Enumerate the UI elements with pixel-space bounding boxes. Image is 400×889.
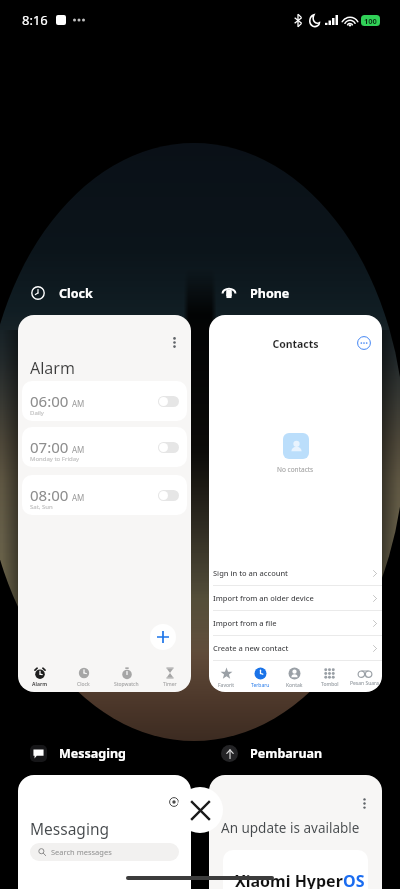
- button[interactable]: Messaging: [29, 743, 126, 763]
- button[interactable]: Alarm: [18, 315, 191, 692]
- staticText: 06:00: [30, 391, 69, 411]
- button[interactable]: Import from a file: [209, 611, 382, 635]
- staticText: Search messages: [51, 847, 112, 857]
- staticText: Messaging: [30, 818, 109, 839]
- staticText: Pembaruan: [250, 745, 323, 762]
- button[interactable]: Import from an older device: [209, 586, 382, 610]
- button[interactable]: Clock: [62, 665, 105, 690]
- staticText: Monday to Friday: [30, 455, 80, 463]
- button[interactable]: Search messages: [30, 843, 179, 861]
- staticText: 07:00: [30, 437, 69, 457]
- staticText: Messaging: [59, 745, 126, 762]
- button[interactable]: Alarm: [18, 665, 62, 690]
- staticText: Sat, Sun: [30, 503, 53, 511]
- staticText: Alarm: [32, 681, 48, 688]
- button[interactable]: Pembaruan: [220, 743, 323, 763]
- staticText: Daily: [30, 409, 44, 417]
- button[interactable]: Toggle alarm: [158, 396, 179, 407]
- staticText: Clock: [77, 681, 90, 688]
- staticText: Contacts: [209, 337, 382, 351]
- staticText: Alarm: [30, 357, 75, 379]
- staticText: Stopwatch: [114, 681, 139, 688]
- button[interactable]: Timer: [148, 665, 191, 690]
- button[interactable]: 06:00: [22, 381, 187, 421]
- button[interactable]: 08:00: [22, 475, 187, 515]
- staticText: Timer: [163, 681, 177, 688]
- staticText: Favorit: [218, 682, 235, 689]
- staticText: Create a new contact: [213, 643, 289, 653]
- staticText: No contacts: [277, 465, 314, 474]
- button[interactable]: Pesan Suara: [347, 665, 382, 690]
- button[interactable]: 07:00: [22, 427, 187, 467]
- button[interactable]: Stopwatch: [105, 665, 148, 690]
- button[interactable]: Clock: [29, 283, 93, 303]
- button[interactable]: Sign in to an account: [209, 561, 382, 585]
- button[interactable]: Toggle alarm: [158, 490, 179, 501]
- button[interactable]: Tombol: [312, 665, 347, 690]
- staticText: Tombol: [321, 681, 339, 688]
- staticText: An update is available: [221, 819, 360, 837]
- staticText: Sign in to an account: [213, 568, 288, 578]
- button[interactable]: Toggle alarm: [158, 442, 179, 453]
- staticText: Xiaomi Hyper: [235, 870, 343, 889]
- button[interactable]: Phone: [220, 283, 290, 303]
- staticText: Pesan Suara: [350, 680, 379, 687]
- button[interactable]: Clear all: [177, 787, 223, 833]
- staticText: 100: [364, 16, 377, 26]
- staticText: 08:00: [30, 485, 69, 505]
- button[interactable]: Create a new contact: [209, 636, 382, 660]
- button[interactable]: Contacts: [209, 315, 382, 692]
- staticText: AM: [72, 444, 85, 455]
- staticText: Phone: [250, 285, 290, 302]
- button[interactable]: An update is available: [209, 775, 382, 889]
- staticText: AM: [72, 492, 85, 503]
- button[interactable]: Terbaru: [243, 665, 277, 690]
- staticText: Terbaru: [251, 682, 270, 689]
- staticText: Import from a file: [213, 618, 277, 628]
- staticText: Kontak: [286, 682, 303, 689]
- staticText: Clock: [59, 285, 93, 302]
- button[interactable]: More options: [357, 336, 371, 350]
- button[interactable]: Add alarm: [150, 624, 176, 650]
- staticText: AM: [72, 398, 85, 409]
- button[interactable]: Kontak: [277, 665, 312, 690]
- button[interactable]: Favorit: [209, 665, 243, 690]
- staticText: Import from an older device: [213, 593, 314, 603]
- button[interactable]: Messaging: [18, 775, 191, 889]
- staticText: 8:16: [22, 11, 48, 29]
- staticText: OS: [343, 870, 365, 889]
